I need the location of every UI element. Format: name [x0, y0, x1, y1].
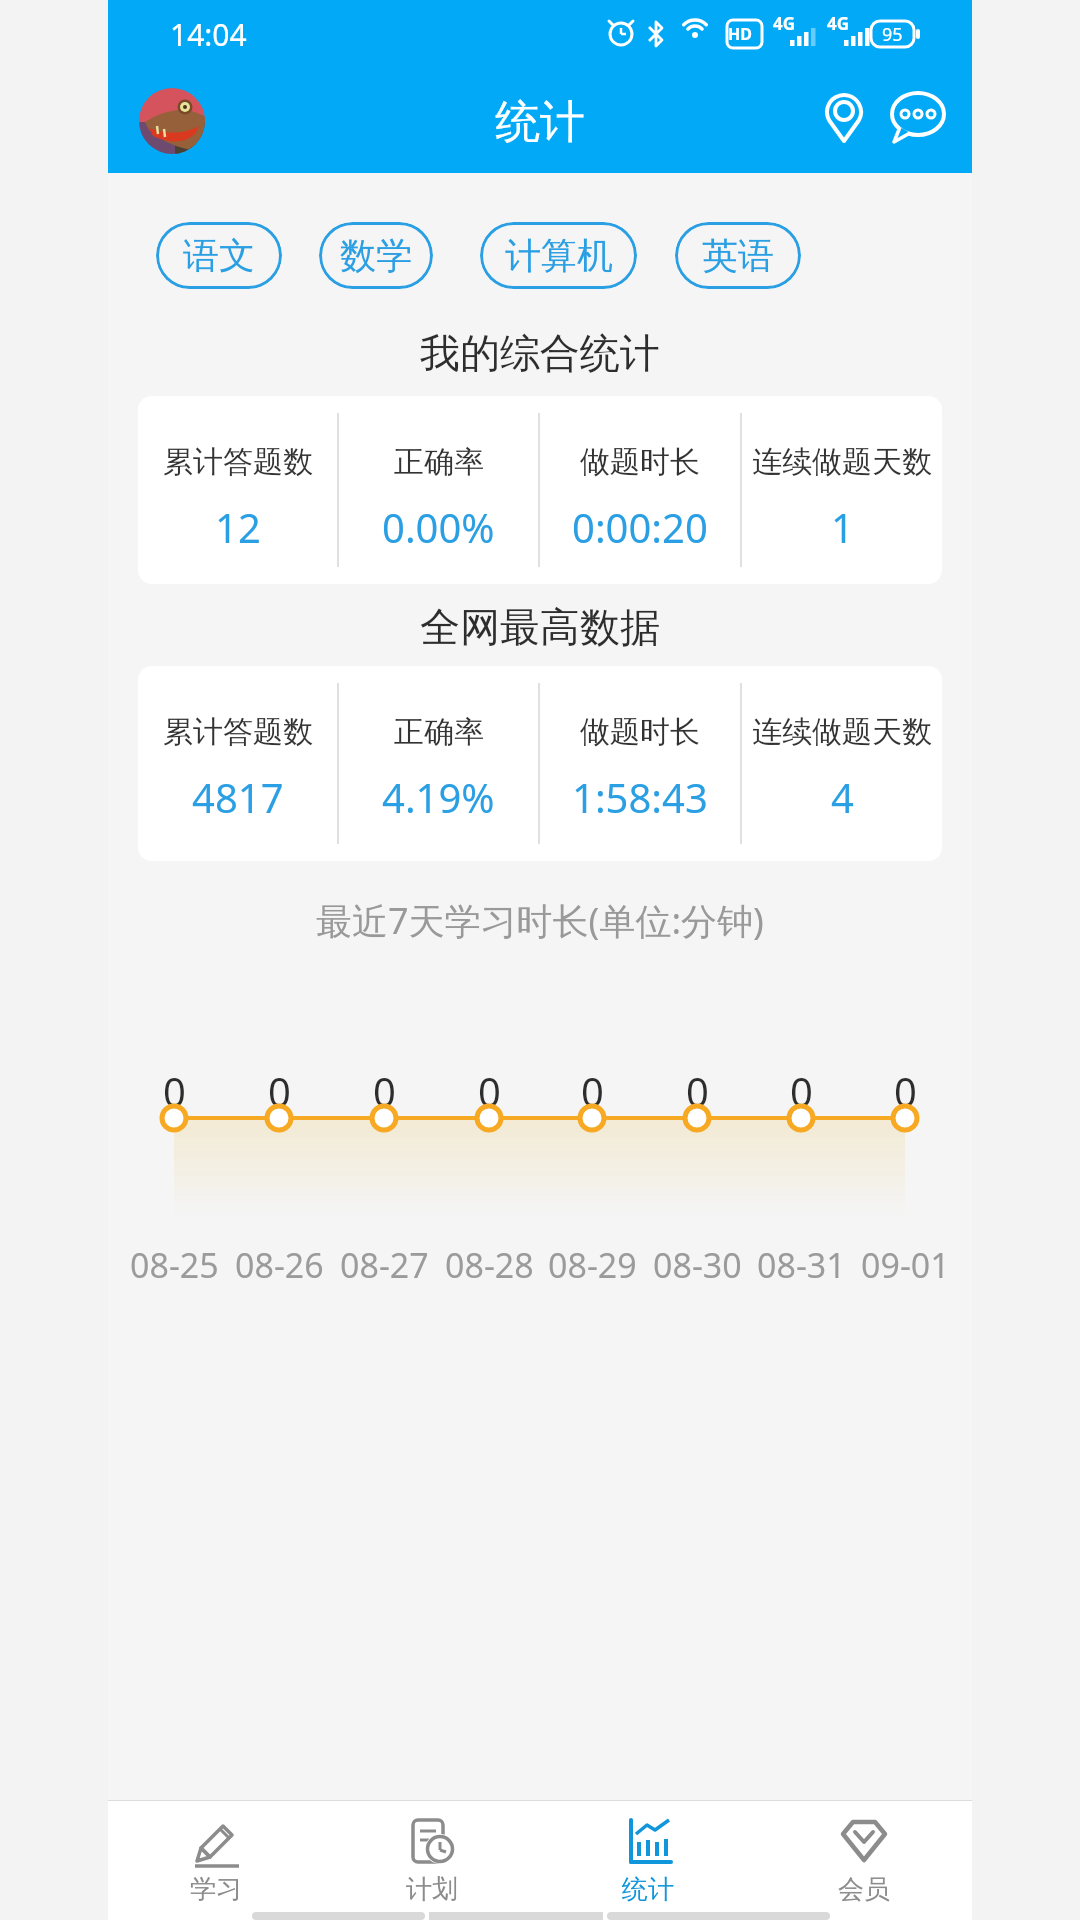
staticText: 学习	[190, 1873, 242, 1906]
staticText: 正确率	[394, 713, 484, 751]
button[interactable]: 学习	[108, 1801, 324, 1920]
staticText: 英语	[702, 233, 774, 278]
staticText: 4G	[827, 12, 850, 34]
button[interactable]: 计划	[324, 1801, 540, 1920]
staticText: 数学	[340, 233, 412, 278]
staticText: 08-26	[235, 1242, 324, 1286]
staticText: HD	[728, 23, 752, 45]
staticText: 08-31	[757, 1242, 846, 1286]
button[interactable]: 语文	[156, 222, 282, 289]
staticText: 12	[215, 500, 261, 554]
staticText: 0	[478, 1064, 501, 1112]
button[interactable]: 计算机	[480, 222, 637, 289]
button[interactable]: 会员	[756, 1801, 972, 1920]
staticText: 95	[882, 22, 903, 47]
staticText: 08-27	[340, 1242, 429, 1286]
staticText: 统计	[495, 94, 585, 148]
staticText: 计划	[406, 1873, 458, 1906]
staticText: 0	[268, 1064, 291, 1112]
button[interactable]	[139, 88, 205, 154]
staticText: 4G	[773, 12, 796, 34]
button[interactable]: 数学	[319, 222, 433, 289]
staticText: 正确率	[394, 443, 484, 481]
staticText: 0	[163, 1064, 186, 1112]
staticText: 14:04	[170, 14, 247, 55]
staticText: 0	[581, 1064, 604, 1112]
staticText: 做题时长	[580, 443, 700, 481]
staticText: 1:58:43	[572, 770, 708, 824]
staticText: 我的综合统计	[420, 328, 660, 376]
staticText: 08-28	[445, 1242, 534, 1286]
staticText: 4	[831, 770, 854, 824]
staticText: 累计答题数	[163, 443, 313, 481]
staticText: 连续做题天数	[752, 713, 932, 751]
staticText: 0	[894, 1064, 917, 1112]
staticText: 0	[373, 1064, 396, 1112]
staticText: 会员	[838, 1873, 890, 1906]
button[interactable]: 英语	[675, 222, 801, 289]
staticText: 全网最高数据	[420, 602, 660, 650]
staticText: 0	[686, 1064, 709, 1112]
staticText: 累计答题数	[163, 713, 313, 751]
staticText: 08-29	[548, 1242, 637, 1286]
staticText: 连续做题天数	[752, 443, 932, 481]
staticText: 0:00:20	[572, 500, 708, 554]
staticText: 1	[831, 500, 854, 554]
staticText: 4.19%	[382, 770, 495, 824]
staticText: 4817	[192, 770, 284, 824]
staticText: 0.00%	[382, 500, 495, 554]
staticText: 08-25	[130, 1242, 219, 1286]
staticText: 0	[790, 1064, 813, 1112]
staticText: 最近7天学习时长(单位:分钟)	[316, 896, 764, 944]
button[interactable]	[886, 88, 946, 148]
staticText: 统计	[622, 1873, 674, 1906]
button[interactable]	[816, 88, 872, 144]
staticText: 08-30	[653, 1242, 742, 1286]
button[interactable]: 统计	[540, 1801, 756, 1920]
staticText: 语文	[183, 233, 255, 278]
staticText: 09-01	[861, 1242, 950, 1286]
staticText: 做题时长	[580, 713, 700, 751]
staticText: 计算机	[505, 233, 613, 278]
